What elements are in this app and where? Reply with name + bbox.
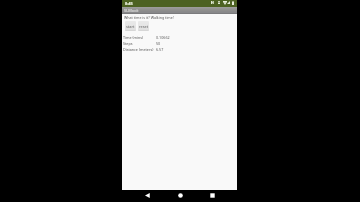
staticText: 0.10662: [156, 35, 170, 40]
button[interactable]: reset: [138, 21, 149, 31]
staticText: 50: [156, 41, 161, 46]
staticText: SLMovit: [124, 8, 139, 13]
button[interactable]: Recent apps: [202, 190, 223, 202]
staticText: Distance (meters): [123, 47, 154, 52]
staticText: reset: [139, 24, 149, 29]
staticText: 6.57: [156, 47, 164, 52]
staticText: What time is it? Walking time!: [124, 15, 174, 20]
staticText: Time (mins): [123, 35, 144, 40]
staticText: start: [126, 24, 135, 29]
button[interactable]: Home: [170, 190, 191, 202]
button[interactable]: Back: [137, 190, 158, 202]
button[interactable]: start: [125, 21, 136, 31]
staticText: Steps: [123, 41, 133, 46]
staticText: 8:45: [125, 1, 133, 6]
